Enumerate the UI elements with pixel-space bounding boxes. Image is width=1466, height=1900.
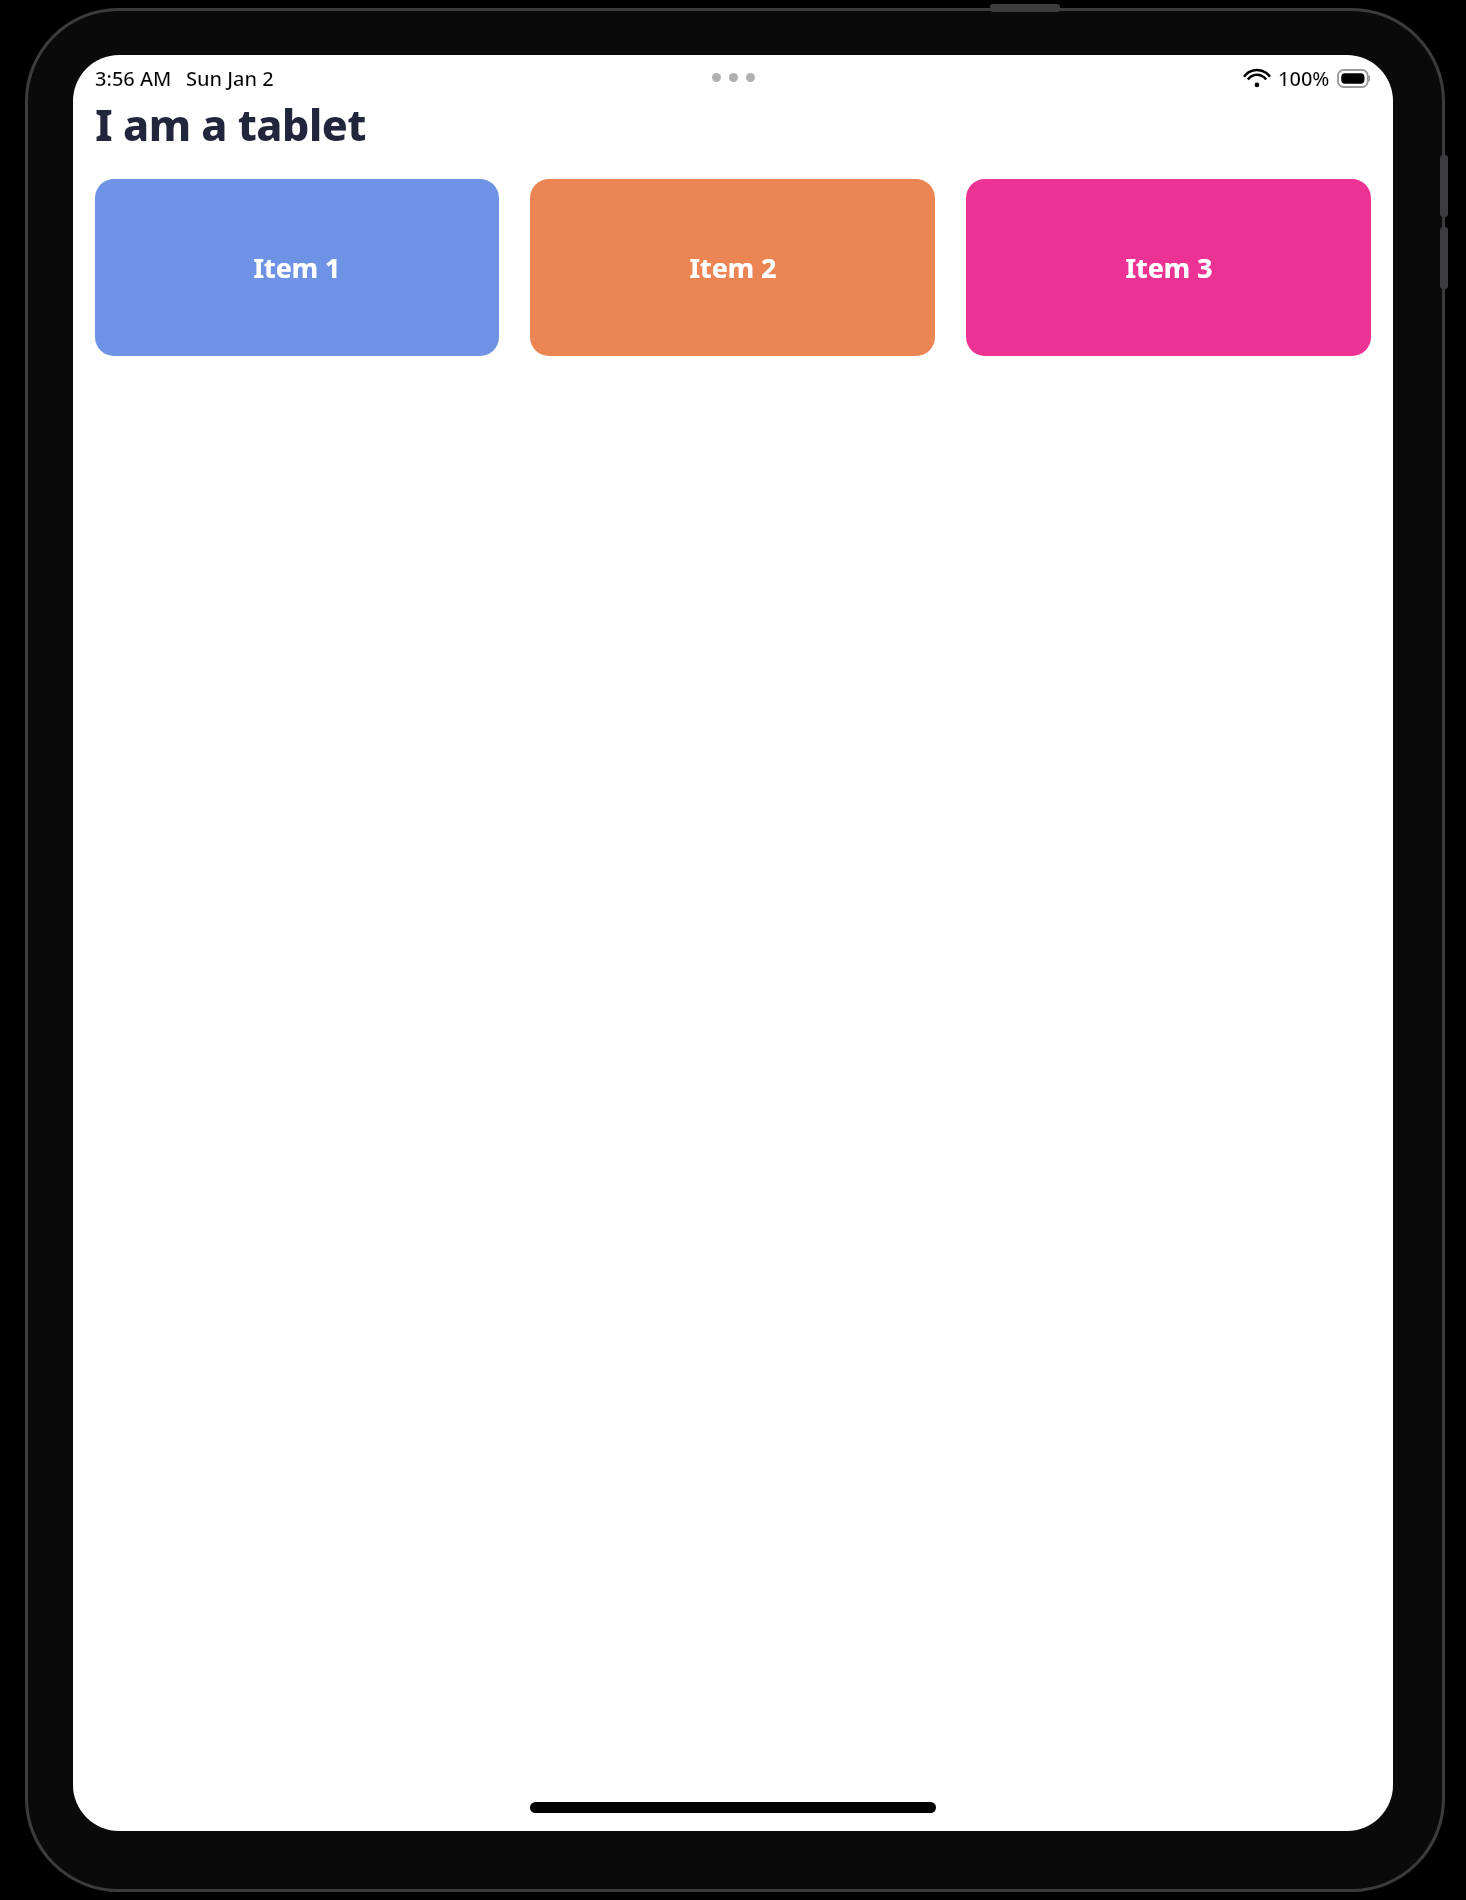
- staticText: Item 2: [689, 249, 777, 286]
- button[interactable]: Item 2: [530, 179, 935, 356]
- staticText: Item 1: [253, 249, 341, 286]
- staticText: 3:56 AM: [95, 65, 172, 92]
- staticText: Sun Jan 2: [186, 65, 274, 92]
- staticText: 100%: [1278, 65, 1330, 92]
- staticText: I am a tablet: [95, 95, 367, 154]
- staticText: Item 3: [1125, 249, 1213, 286]
- button[interactable]: Item 3: [966, 179, 1371, 356]
- button[interactable]: Item 1: [95, 179, 499, 356]
